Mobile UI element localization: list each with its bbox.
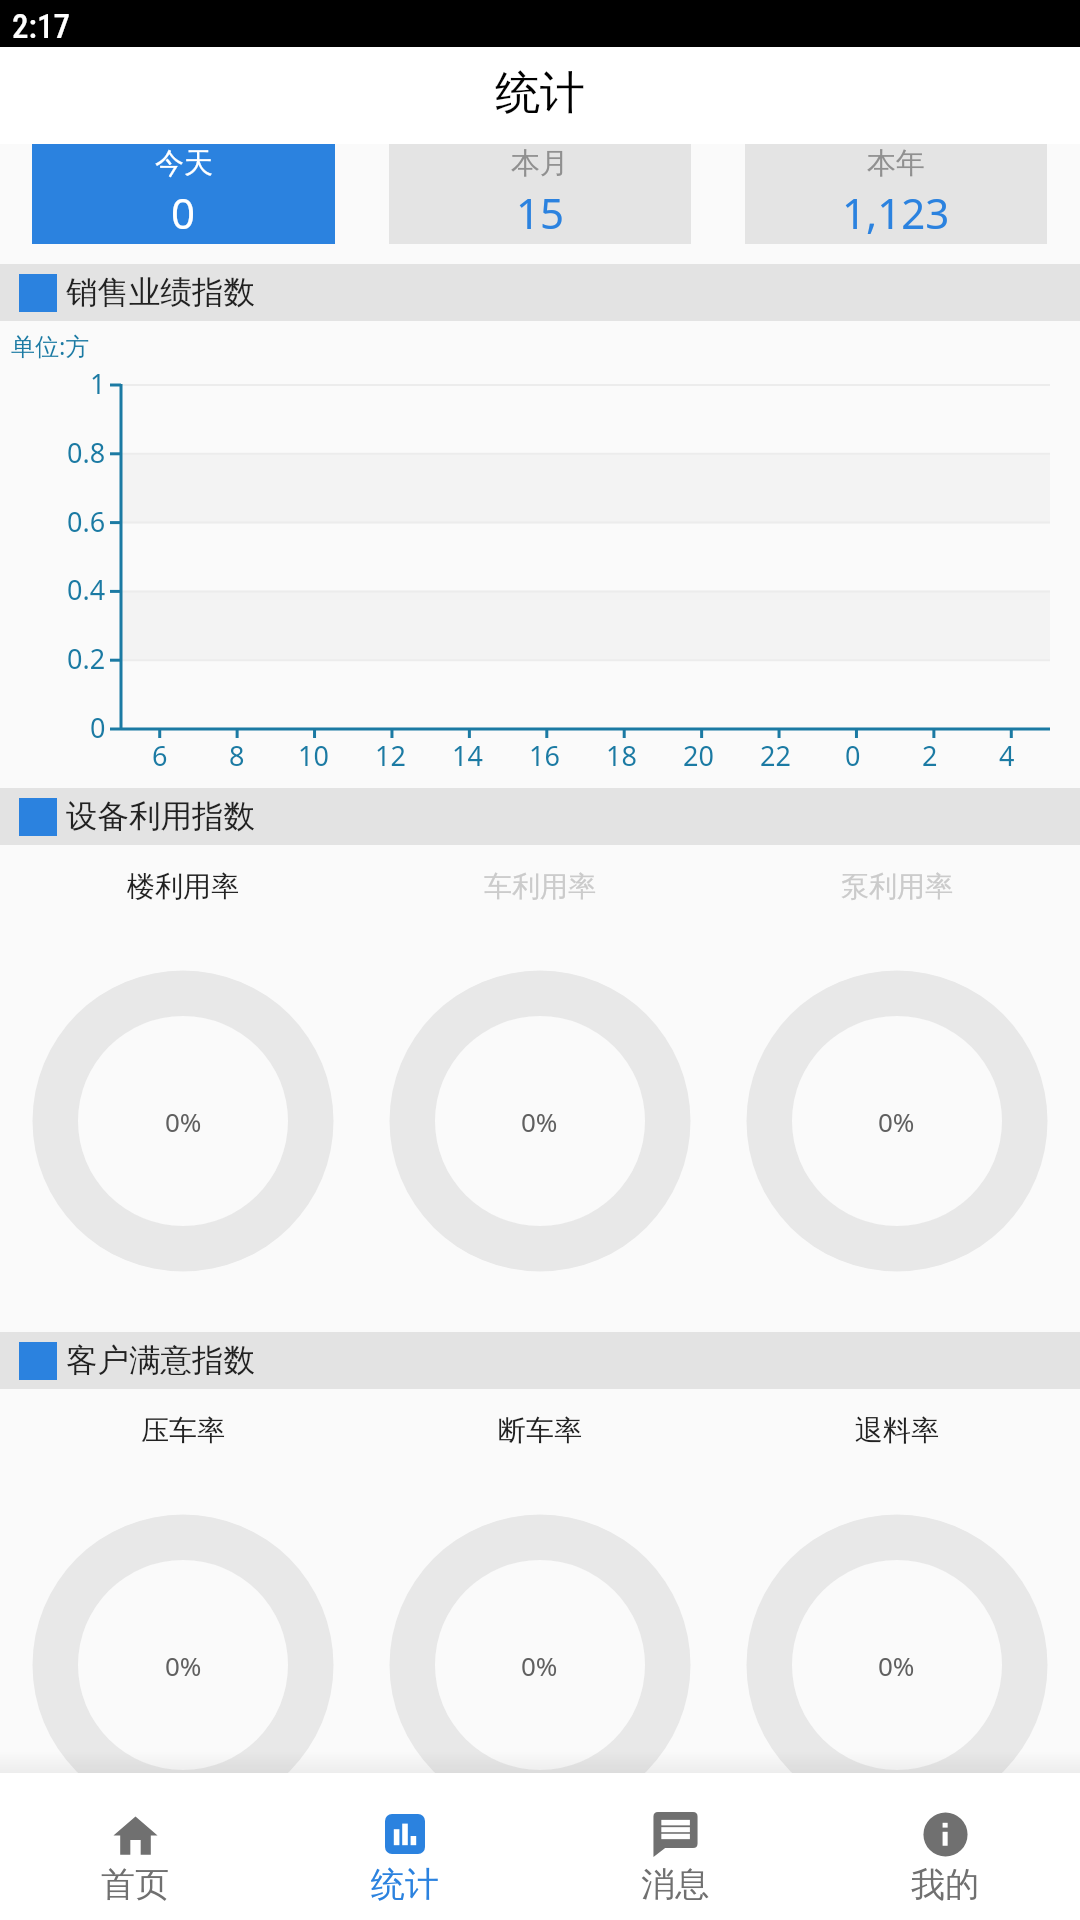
staticText: 0%	[878, 1648, 915, 1683]
other: 统计	[385, 1814, 425, 1854]
staticText: 本月	[511, 145, 569, 182]
staticText: 泵利用率	[841, 869, 953, 901]
button[interactable]: 我的	[810, 1773, 1080, 1920]
staticText: 0%	[521, 1648, 558, 1683]
button[interactable]: 本年	[745, 144, 1047, 244]
staticText: 1,123	[842, 184, 950, 241]
staticText: 14	[452, 737, 483, 774]
staticText: 客户满意指数	[66, 1341, 255, 1381]
staticText: 设备利用指数	[66, 797, 255, 837]
staticText: 首页	[101, 1863, 169, 1906]
button[interactable]: 退料率	[718, 1413, 1075, 1445]
staticText: 2:17	[12, 7, 70, 46]
button[interactable]: 压车率	[5, 1413, 361, 1445]
staticText: 1	[90, 365, 106, 402]
button[interactable]: 今天	[32, 144, 335, 244]
staticText: 压车率	[141, 1413, 225, 1445]
staticText: 6	[152, 737, 168, 774]
staticText: 0	[845, 737, 861, 774]
button[interactable]: 断车率	[361, 1413, 718, 1445]
button[interactable]: 首页	[0, 1773, 270, 1920]
staticText: 车利用率	[484, 869, 596, 901]
staticText: 今天	[155, 145, 213, 182]
staticText: 22	[760, 737, 791, 774]
staticText: 断车率	[498, 1413, 582, 1445]
staticText: 15	[516, 184, 565, 241]
staticText: 0%	[521, 1104, 558, 1139]
staticText: 我的	[911, 1863, 979, 1906]
staticText: 0.4	[67, 571, 106, 608]
button[interactable]: 泵利用率	[718, 869, 1075, 901]
staticText: 20	[683, 737, 714, 774]
staticText: 2	[922, 737, 938, 774]
staticText: 0.2	[67, 640, 106, 677]
staticText: 0%	[165, 1648, 202, 1683]
button[interactable]: 消息	[540, 1773, 810, 1920]
staticText: 消息	[641, 1863, 709, 1906]
staticText: 18	[606, 737, 637, 774]
other: 消息	[653, 1812, 698, 1857]
other: 首页	[113, 1813, 158, 1858]
staticText: 本年	[867, 145, 925, 182]
button[interactable]: 本月	[389, 144, 691, 244]
staticText: 销售业绩指数	[66, 273, 255, 313]
staticText: 0	[171, 184, 196, 241]
staticText: 0%	[878, 1104, 915, 1139]
button[interactable]: 统计	[270, 1773, 540, 1920]
staticText: 16	[529, 737, 560, 774]
staticText: 4	[999, 737, 1015, 774]
staticText: 0.8	[67, 434, 106, 471]
staticText: 统计	[495, 65, 585, 122]
other: 我的	[923, 1812, 968, 1857]
staticText: 单位:方	[11, 329, 90, 362]
staticText: 0	[90, 709, 106, 746]
staticText: 退料率	[855, 1413, 939, 1445]
staticText: 12	[375, 737, 406, 774]
button[interactable]: 楼利用率	[5, 869, 361, 901]
staticText: 10	[298, 737, 329, 774]
staticText: 0%	[165, 1104, 202, 1139]
staticText: 0.6	[67, 503, 106, 540]
staticText: 统计	[371, 1863, 439, 1906]
staticText: 楼利用率	[127, 869, 239, 901]
button[interactable]: 车利用率	[361, 869, 718, 901]
staticText: 8	[229, 737, 245, 774]
